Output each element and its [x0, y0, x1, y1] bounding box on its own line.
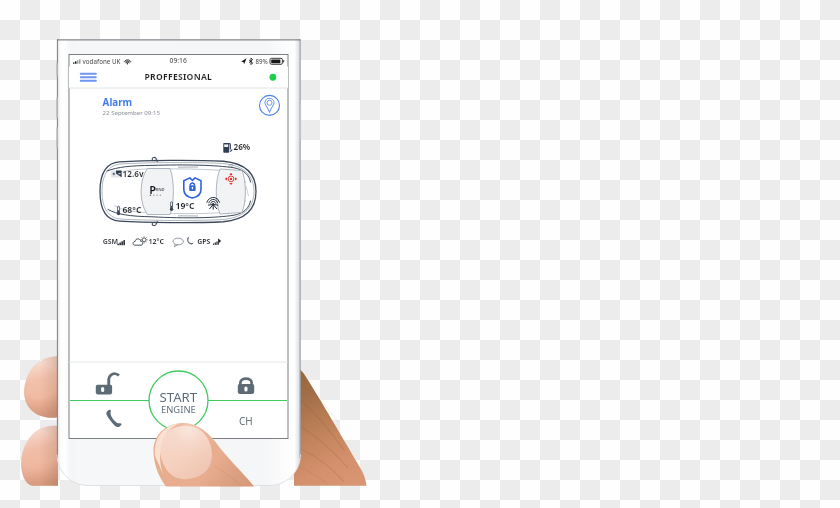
button[interactable] [95, 133, 265, 227]
button[interactable] [149, 371, 208, 430]
button[interactable]: Unlock doors [70, 363, 124, 401]
button[interactable] [69, 89, 249, 121]
button[interactable]: Call vehicle [70, 402, 124, 437]
button[interactable] [219, 402, 273, 437]
button[interactable]: Open navigation menu [76, 67, 106, 88]
button[interactable]: Lock doors [219, 363, 273, 401]
button[interactable]: Connection status [262, 67, 288, 88]
button[interactable]: Locate vehicle [257, 93, 283, 119]
